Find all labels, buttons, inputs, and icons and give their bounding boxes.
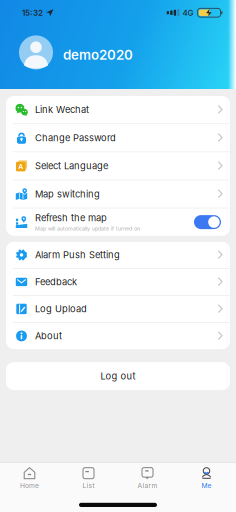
staticText: About (35, 330, 62, 341)
staticText: 4G (183, 8, 194, 17)
button[interactable]: Alarm Push Setting (6, 242, 230, 268)
staticText: Map switching (35, 188, 100, 199)
staticText: Change Password (35, 132, 116, 143)
staticText: Alarm Push Setting (35, 249, 120, 260)
staticText: Select Language (35, 160, 108, 171)
staticText: Home (20, 482, 39, 490)
button[interactable]: Log Upload (6, 296, 230, 322)
staticText: 15:32 (22, 8, 43, 17)
button[interactable]: About (6, 323, 230, 349)
button[interactable]: Change Password (6, 124, 230, 151)
button[interactable]: Link Wechat (6, 96, 230, 123)
button[interactable]: Feedback (6, 269, 230, 295)
staticText: Link Wechat (35, 104, 89, 115)
staticText: demo2020 (63, 47, 133, 63)
staticText: Map will automatically update if turned … (35, 225, 140, 232)
staticText: Feedback (35, 276, 77, 287)
button[interactable]: Me (177, 467, 236, 490)
button[interactable]: Log out (6, 362, 230, 390)
staticText: Refresh the map (35, 212, 107, 223)
button[interactable]: A (6, 152, 230, 180)
staticText: List (82, 482, 94, 490)
button[interactable]: Home (0, 467, 59, 490)
staticText: Log out (100, 371, 135, 382)
button[interactable]: Alarm (118, 467, 177, 490)
button[interactable]: Map switching (6, 180, 230, 208)
button[interactable]: Refresh the map (194, 215, 221, 229)
staticText: Alarm (137, 482, 157, 490)
staticText: Me (201, 482, 211, 490)
button[interactable]: List (59, 467, 118, 490)
staticText: A (18, 163, 23, 171)
staticText: Log Upload (35, 303, 87, 314)
